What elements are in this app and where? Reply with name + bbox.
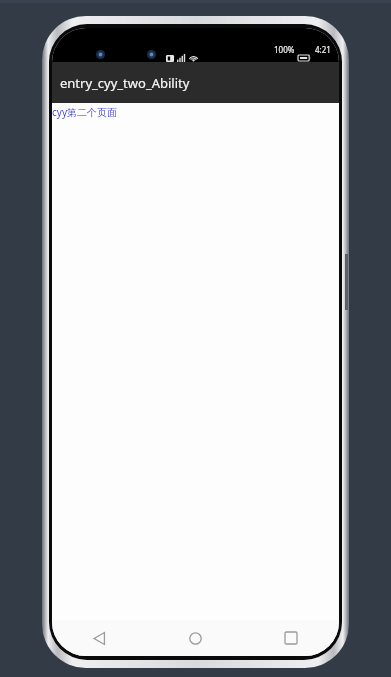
staticText: 4:21	[315, 44, 331, 55]
staticText: 100%	[274, 44, 295, 55]
button[interactable]: Back	[52, 620, 147, 656]
button[interactable]: cyy第二个页面	[52, 105, 117, 119]
button[interactable]: Recent apps	[243, 620, 339, 656]
staticText: entry_cyy_two_Ability	[60, 74, 190, 92]
button[interactable]: Home	[147, 620, 243, 656]
